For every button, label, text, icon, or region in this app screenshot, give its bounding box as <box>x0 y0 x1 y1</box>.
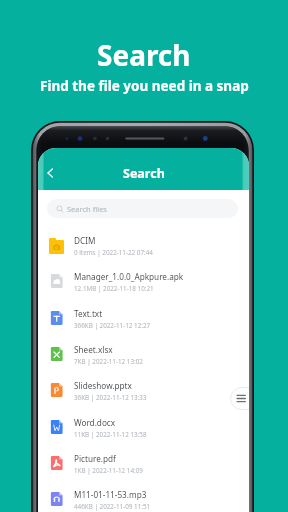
staticText: Find the file you need in a snap <box>40 77 249 95</box>
staticText: Search files <box>67 204 107 214</box>
button[interactable]: Text.txt <box>38 301 249 337</box>
button[interactable]: DCIM <box>38 228 249 264</box>
button[interactable]: Picture.pdf <box>38 446 249 482</box>
button[interactable]: Back <box>42 165 58 181</box>
staticText: 446KB | 2022-11-09 11:51 <box>74 502 151 511</box>
staticText: 0 items | 2022-11-22 07:44 <box>74 248 153 257</box>
staticText: Picture.pdf <box>74 453 116 464</box>
staticText: 11KB | 2022-11-12 13:58 <box>74 430 147 439</box>
staticText: 1KB | 2022-11-12 14:09 <box>74 466 143 475</box>
button[interactable]: Search files <box>47 199 238 218</box>
button[interactable]: Word.docx <box>38 410 249 446</box>
button[interactable]: M11-01-11-53.mp3 <box>38 482 249 512</box>
staticText: Text.txt <box>74 308 103 319</box>
button[interactable]: Sheet.xlsx <box>38 337 249 373</box>
staticText: Manager_1.0.0_Apkpure.apk <box>74 271 184 282</box>
staticText: 36KB | 2022-11-12 13:33 <box>74 393 147 402</box>
staticText: Sheet.xlsx <box>74 344 113 355</box>
staticText: DCIM <box>74 235 96 246</box>
staticText: 12.1MB | 2022-11-18 10:21 <box>74 284 154 293</box>
staticText: Search <box>123 165 165 182</box>
staticText: 366KB | 2022-11-12 12:27 <box>74 321 151 330</box>
staticText: 7KB | 2022-11-12 13:02 <box>74 357 143 366</box>
staticText: Slideshow.pptx <box>74 380 132 391</box>
button[interactable]: Sort <box>230 387 249 410</box>
button[interactable]: Slideshow.pptx <box>38 373 249 409</box>
staticText: Search <box>97 36 191 74</box>
button[interactable]: Manager_1.0.0_Apkpure.apk <box>38 264 249 300</box>
staticText: M11-01-11-53.mp3 <box>74 489 147 500</box>
staticText: Word.docx <box>74 417 116 428</box>
